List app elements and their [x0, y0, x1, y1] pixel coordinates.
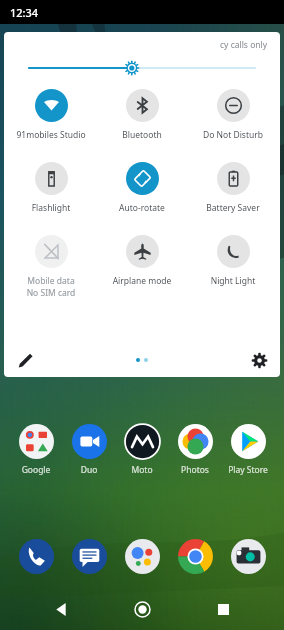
staticText: Do Not Disturb [189, 129, 277, 141]
button[interactable]: Camera [225, 533, 271, 579]
staticText: Airplane mode [98, 275, 186, 287]
button[interactable]: Brightness [29, 57, 255, 79]
button[interactable]: Night Light [189, 235, 277, 287]
button[interactable]: Settings [246, 347, 272, 373]
button[interactable]: Bluetooth [98, 89, 186, 141]
staticText: Bluetooth [98, 129, 186, 141]
button[interactable]: Phone [13, 533, 59, 579]
button[interactable]: Home [122, 589, 162, 629]
staticText: Night Light [189, 275, 277, 287]
staticText: Google [13, 464, 59, 476]
button[interactable]: Auto-rotate [98, 162, 186, 214]
button[interactable]: Chrome [172, 533, 218, 579]
staticText: 91mobiles Studio [7, 129, 95, 141]
button[interactable]: Battery Saver [189, 162, 277, 214]
button[interactable]: Messages [66, 533, 112, 579]
staticText: cy calls only [220, 39, 268, 51]
button[interactable]: Do Not Disturb [189, 89, 277, 141]
staticText: Auto-rotate [98, 202, 186, 214]
button[interactable]: Moto [119, 424, 165, 476]
staticText: Duo [66, 464, 112, 476]
staticText: Play Store [225, 464, 271, 476]
button[interactable]: Flashlight [7, 162, 95, 214]
staticText: Flashlight [7, 202, 95, 214]
staticText: Mobile data No SIM card [7, 275, 95, 298]
button[interactable]: Photos [172, 424, 218, 476]
button[interactable]: Airplane mode [98, 235, 186, 287]
button[interactable]: Mobile data No SIM card [7, 235, 95, 298]
button[interactable]: Google [13, 424, 59, 476]
button[interactable]: Recents [203, 589, 243, 629]
button[interactable]: Play Store [225, 424, 271, 476]
button[interactable]: Back [41, 589, 81, 629]
button[interactable]: Duo [66, 424, 112, 476]
staticText: Moto [119, 464, 165, 476]
staticText: Photos [172, 464, 218, 476]
button[interactable]: 91mobiles Studio [7, 89, 95, 141]
button[interactable]: Edit tiles [12, 347, 38, 373]
staticText: 12:34 [10, 5, 39, 20]
staticText: Battery Saver [189, 202, 277, 214]
button[interactable]: Assistant [119, 533, 165, 579]
